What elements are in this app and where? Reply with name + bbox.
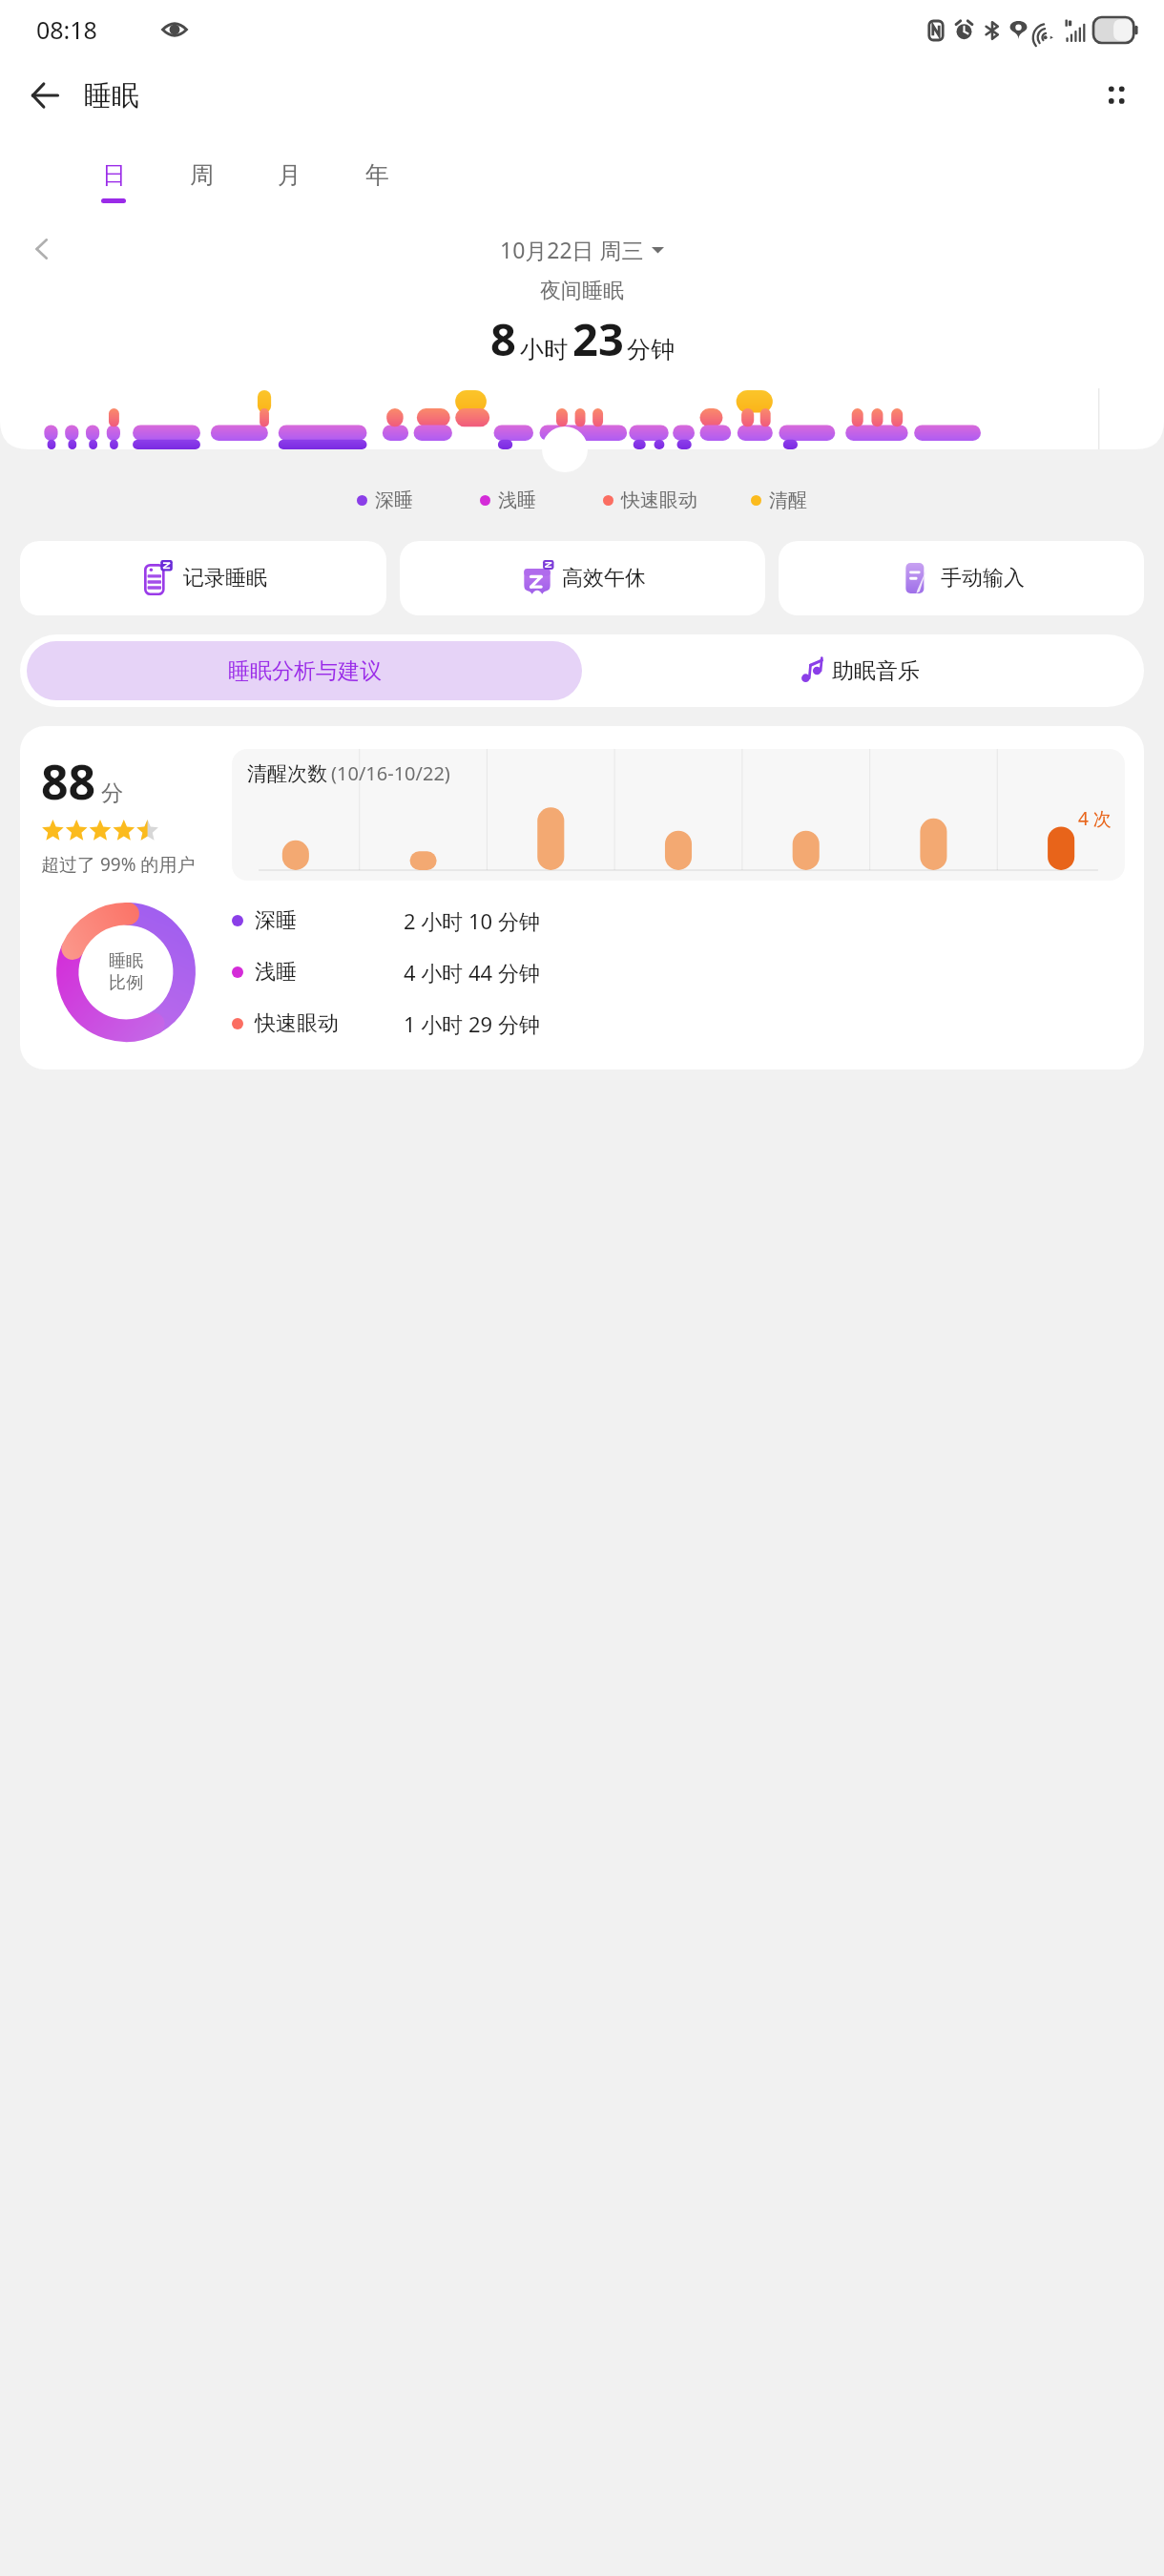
staticText: 浅睡 bbox=[255, 959, 404, 986]
button[interactable]: 清醒 bbox=[751, 488, 807, 512]
button[interactable]: 88 bbox=[20, 726, 1144, 1070]
staticText: 年 bbox=[365, 160, 389, 190]
staticText: 23 bbox=[572, 308, 624, 369]
staticText: 清醒次数 bbox=[247, 761, 327, 786]
button[interactable]: 周 bbox=[179, 158, 223, 200]
staticText: 比例 bbox=[109, 972, 143, 994]
staticText: 夜间睡眠 bbox=[0, 278, 1164, 304]
button[interactable]: Previous day bbox=[21, 228, 63, 270]
button[interactable]: 年 bbox=[355, 158, 399, 200]
staticText: 深睡 bbox=[255, 907, 404, 934]
staticText: 分钟 bbox=[627, 335, 675, 364]
button[interactable]: 快速眼动 bbox=[603, 488, 697, 512]
staticText: 日 bbox=[102, 160, 126, 190]
staticText: 88 bbox=[41, 749, 96, 814]
staticText: 月 bbox=[278, 160, 301, 190]
staticText: 浅睡 bbox=[498, 488, 536, 512]
button[interactable]: 日 bbox=[92, 158, 135, 205]
button[interactable]: 月 bbox=[267, 158, 311, 200]
button[interactable]: 手动输入 bbox=[779, 541, 1144, 615]
staticText: 快速眼动 bbox=[621, 488, 697, 512]
staticText: 小时 bbox=[520, 335, 568, 364]
staticText: 4 小时 44 分钟 bbox=[404, 958, 540, 987]
staticText: 睡眠分析与建议 bbox=[228, 657, 382, 685]
button[interactable]: 记录睡眠 bbox=[20, 541, 386, 615]
staticText: 记录睡眠 bbox=[183, 565, 267, 592]
staticText: 睡眠 bbox=[84, 78, 139, 114]
button[interactable]: 睡眠分析与建议 bbox=[27, 641, 582, 700]
button[interactable]: More options bbox=[1091, 71, 1141, 120]
staticText: 分 bbox=[101, 779, 123, 807]
staticText: 手动输入 bbox=[941, 565, 1025, 592]
button[interactable]: 助眠音乐 bbox=[582, 641, 1137, 700]
staticText: 深睡 bbox=[375, 488, 413, 512]
button[interactable]: Sleep detail bbox=[542, 426, 588, 472]
staticText: 快速眼动 bbox=[255, 1010, 404, 1037]
button[interactable]: 浅睡 bbox=[480, 488, 536, 512]
staticText: 高效午休 bbox=[562, 565, 646, 592]
button[interactable]: 10月22日 周三 bbox=[494, 233, 670, 266]
button[interactable]: Back bbox=[19, 70, 71, 121]
button[interactable]: 深睡 bbox=[357, 488, 413, 512]
staticText: 睡眠 bbox=[109, 950, 143, 972]
staticText: 10月22日 周三 bbox=[500, 235, 644, 264]
staticText: (10/16-10/22) bbox=[331, 760, 450, 786]
staticText: 周 bbox=[190, 160, 214, 190]
staticText: 清醒 bbox=[769, 488, 807, 512]
staticText: 1 小时 29 分钟 bbox=[404, 1009, 540, 1038]
staticText: 助眠音乐 bbox=[832, 657, 920, 685]
staticText: 4 次 bbox=[1078, 806, 1112, 831]
staticText: 2 小时 10 分钟 bbox=[404, 906, 540, 935]
button[interactable]: 高效午休 bbox=[400, 541, 765, 615]
staticText: 超过了 99% 的用户 bbox=[41, 852, 196, 877]
staticText: 08:18 bbox=[36, 13, 97, 46]
staticText: 8 bbox=[490, 308, 516, 369]
